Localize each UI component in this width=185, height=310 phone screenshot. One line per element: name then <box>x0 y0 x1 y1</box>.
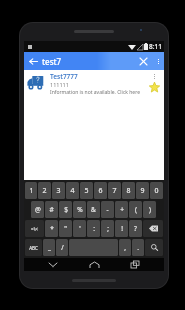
button[interactable]: Home <box>82 258 106 271</box>
staticText: 3 <box>56 186 61 196</box>
button[interactable]: 4 <box>66 182 79 199</box>
button[interactable]: 2 <box>38 182 51 199</box>
button[interactable]: 3 <box>52 182 65 199</box>
button[interactable]: Test7777 <box>24 70 164 180</box>
button[interactable]: Navigate up <box>24 52 42 70</box>
staticText: % <box>77 205 83 214</box>
staticText: 8 <box>126 186 131 196</box>
staticText: " <box>64 224 67 233</box>
staticText: 6 <box>98 186 103 196</box>
staticText: ? <box>134 224 137 233</box>
button[interactable]: : <box>87 220 100 237</box>
staticText: test7 <box>42 56 62 67</box>
staticText: & <box>91 205 96 214</box>
button[interactable]: More options <box>152 52 164 70</box>
button[interactable]: + <box>115 201 128 218</box>
staticText: , <box>124 243 126 252</box>
button[interactable]: / <box>56 239 68 256</box>
staticText: 8:11 <box>149 42 162 51</box>
staticText: 0 <box>154 186 159 196</box>
button[interactable]: Recent apps <box>123 258 147 271</box>
staticText: ! <box>121 224 123 233</box>
button[interactable]: ; <box>101 220 114 237</box>
staticText: 1 <box>29 186 34 196</box>
staticText: Test7777 <box>50 72 78 81</box>
button[interactable]: 5 <box>80 182 93 199</box>
staticText: * <box>50 224 54 233</box>
button[interactable]: # <box>45 201 58 218</box>
staticText: _ <box>48 243 51 252</box>
button[interactable]: ? <box>129 220 142 237</box>
button[interactable]: , <box>119 239 131 256</box>
staticText: 7 <box>112 186 117 196</box>
staticText: $ <box>64 205 68 214</box>
staticText: =\< <box>31 226 38 232</box>
staticText: - <box>106 205 109 214</box>
button[interactable]: @ <box>31 201 44 218</box>
staticText: : <box>93 224 95 233</box>
button[interactable]: _ <box>43 239 55 256</box>
staticText: 4 <box>70 186 75 196</box>
staticText: . <box>137 243 139 252</box>
button[interactable]: 1 <box>25 182 37 199</box>
button[interactable]: Backspace <box>143 220 163 237</box>
button[interactable]: $ <box>59 201 72 218</box>
button[interactable]: =\< <box>25 220 44 237</box>
staticText: ; <box>107 224 109 233</box>
button[interactable]: - <box>101 201 114 218</box>
staticText: ' <box>79 224 81 233</box>
staticText: / <box>61 243 64 252</box>
button[interactable]: 6 <box>94 182 107 199</box>
button[interactable]: 8 <box>122 182 135 199</box>
button[interactable]: ! <box>115 220 128 237</box>
button[interactable]: Close <box>134 52 152 70</box>
button[interactable]: ABC <box>25 239 42 256</box>
button[interactable]: . <box>132 239 144 256</box>
button[interactable]: Hide keyboard <box>41 258 65 271</box>
staticText: # <box>49 205 54 214</box>
staticText: ABC <box>29 245 38 251</box>
staticText: 2 <box>42 186 47 196</box>
staticText: @ <box>35 205 41 214</box>
staticText: 5 <box>84 186 89 196</box>
button[interactable]: " <box>59 220 72 237</box>
staticText: ) <box>149 205 151 214</box>
button[interactable]: ( <box>129 201 142 218</box>
button[interactable]: 0 <box>150 182 163 199</box>
button[interactable]: * <box>45 220 58 237</box>
button[interactable]: 7 <box>108 182 121 199</box>
staticText: ( <box>135 205 137 214</box>
button[interactable]: ) <box>143 201 156 218</box>
staticText: Information is not available. Click here… <box>50 89 146 96</box>
button[interactable]: Search <box>145 239 163 256</box>
staticText: 111111 <box>50 81 69 88</box>
button[interactable]: & <box>87 201 100 218</box>
button[interactable]: 9 <box>136 182 149 199</box>
button[interactable]: % <box>73 201 86 218</box>
staticText: 9 <box>140 186 145 196</box>
staticText: + <box>120 205 124 214</box>
button[interactable]: More options <box>149 72 159 81</box>
button[interactable]: Favourite <box>148 81 160 93</box>
button[interactable]: ' <box>73 220 86 237</box>
